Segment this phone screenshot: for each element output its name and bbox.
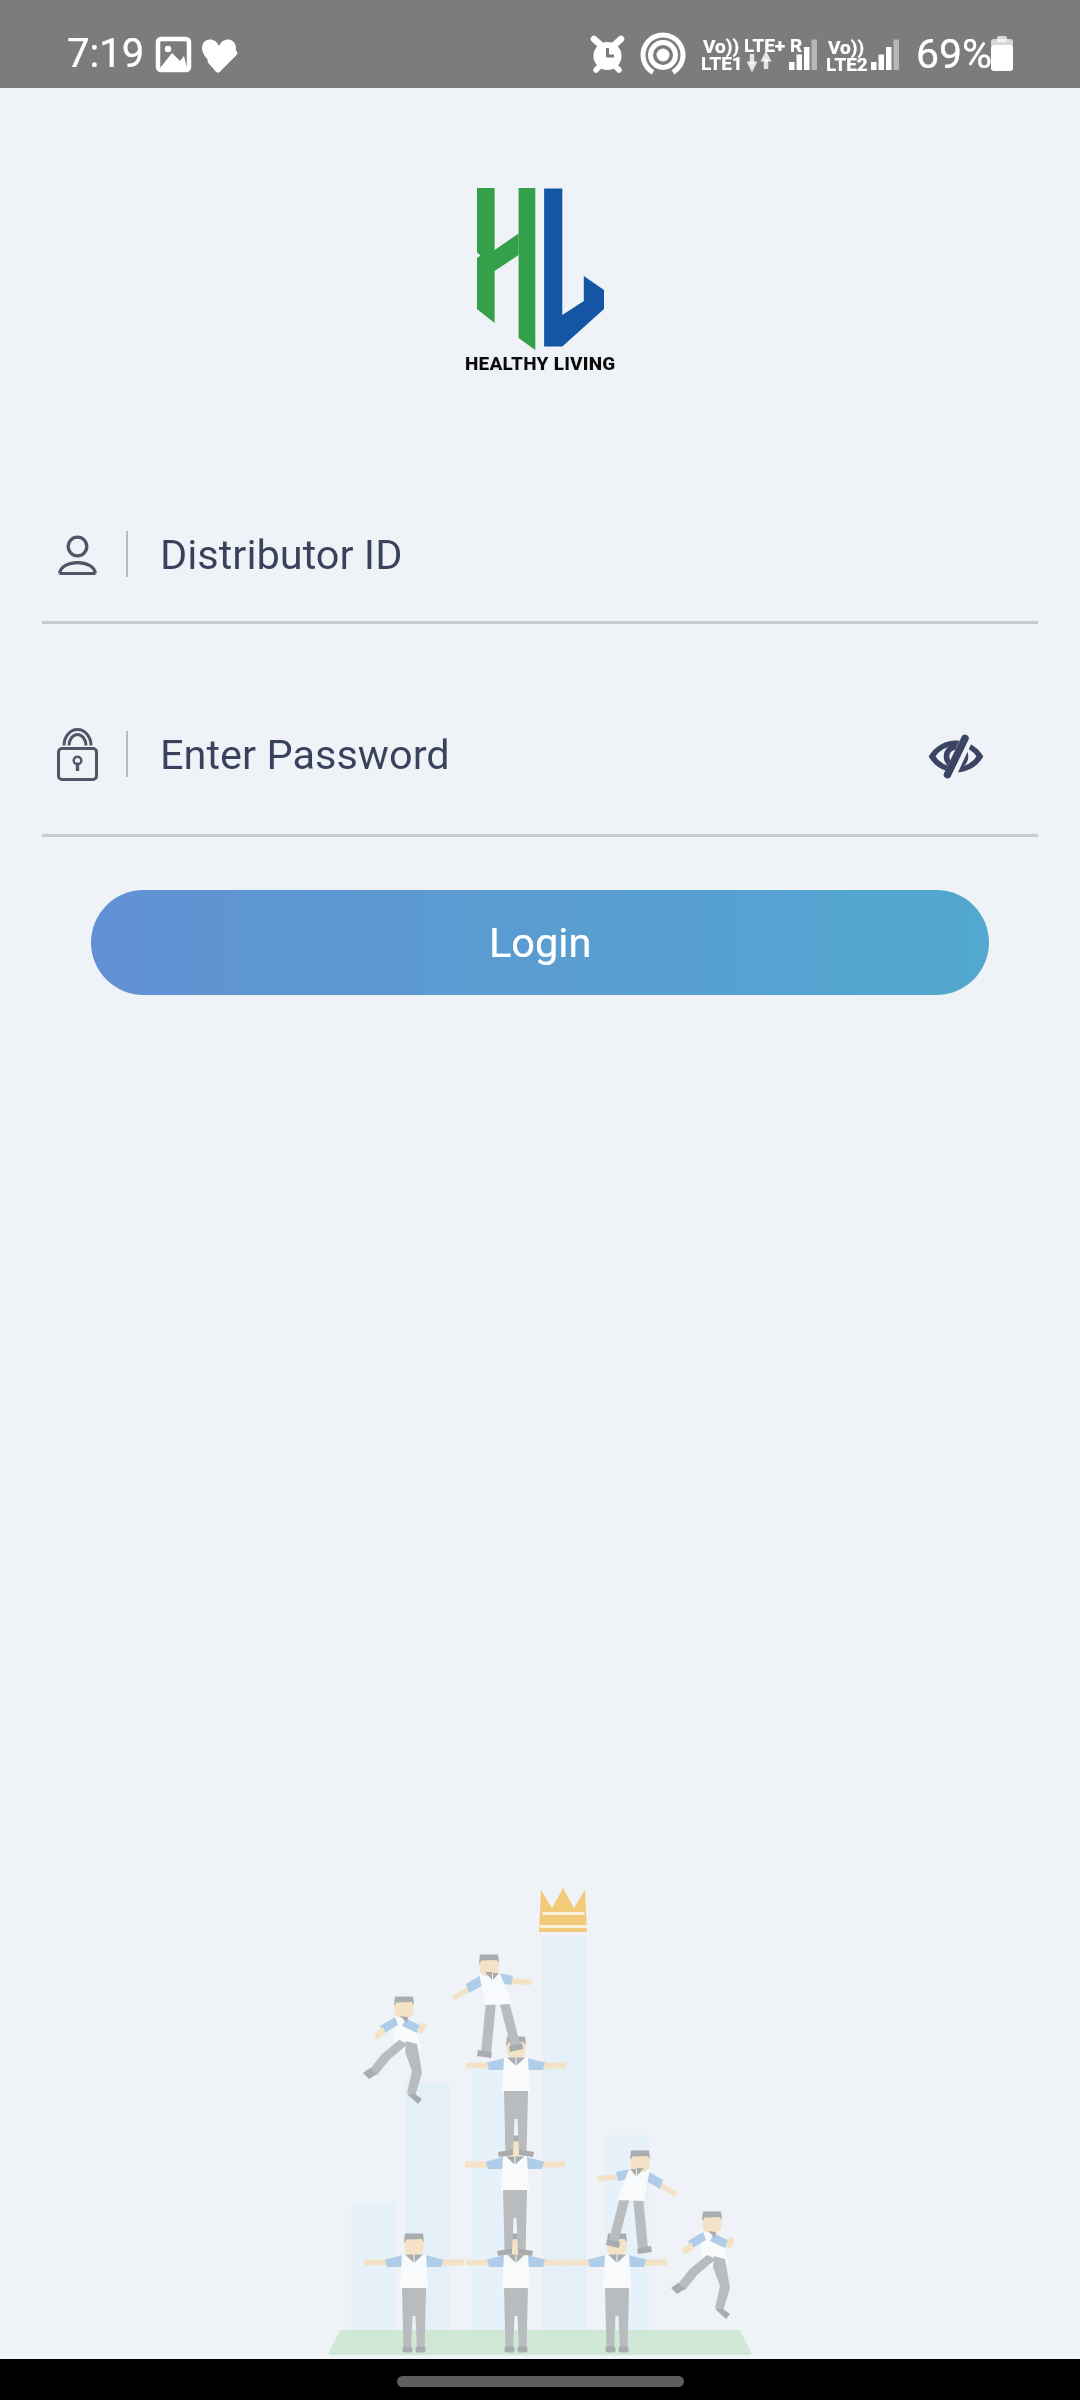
staticText: 7:19 (67, 30, 145, 77)
staticText: LTE2 (826, 53, 868, 75)
button[interactable]: Enter Password (0, 724, 1080, 834)
button[interactable]: Login (91, 890, 989, 995)
staticText: LTE1 (701, 52, 743, 74)
button[interactable]: Show password (916, 724, 996, 784)
staticText: Enter Password (160, 730, 450, 779)
staticText: 69% (916, 30, 993, 78)
staticText: Vo)) (703, 35, 740, 57)
staticText: Vo)) (828, 36, 865, 58)
button[interactable]: Distributor ID (0, 524, 1080, 621)
staticText: HEALTHY LIVING (465, 352, 616, 374)
staticText: LTE+ R (744, 34, 803, 56)
staticText: Distributor ID (160, 530, 403, 579)
staticText: Login (489, 918, 592, 967)
